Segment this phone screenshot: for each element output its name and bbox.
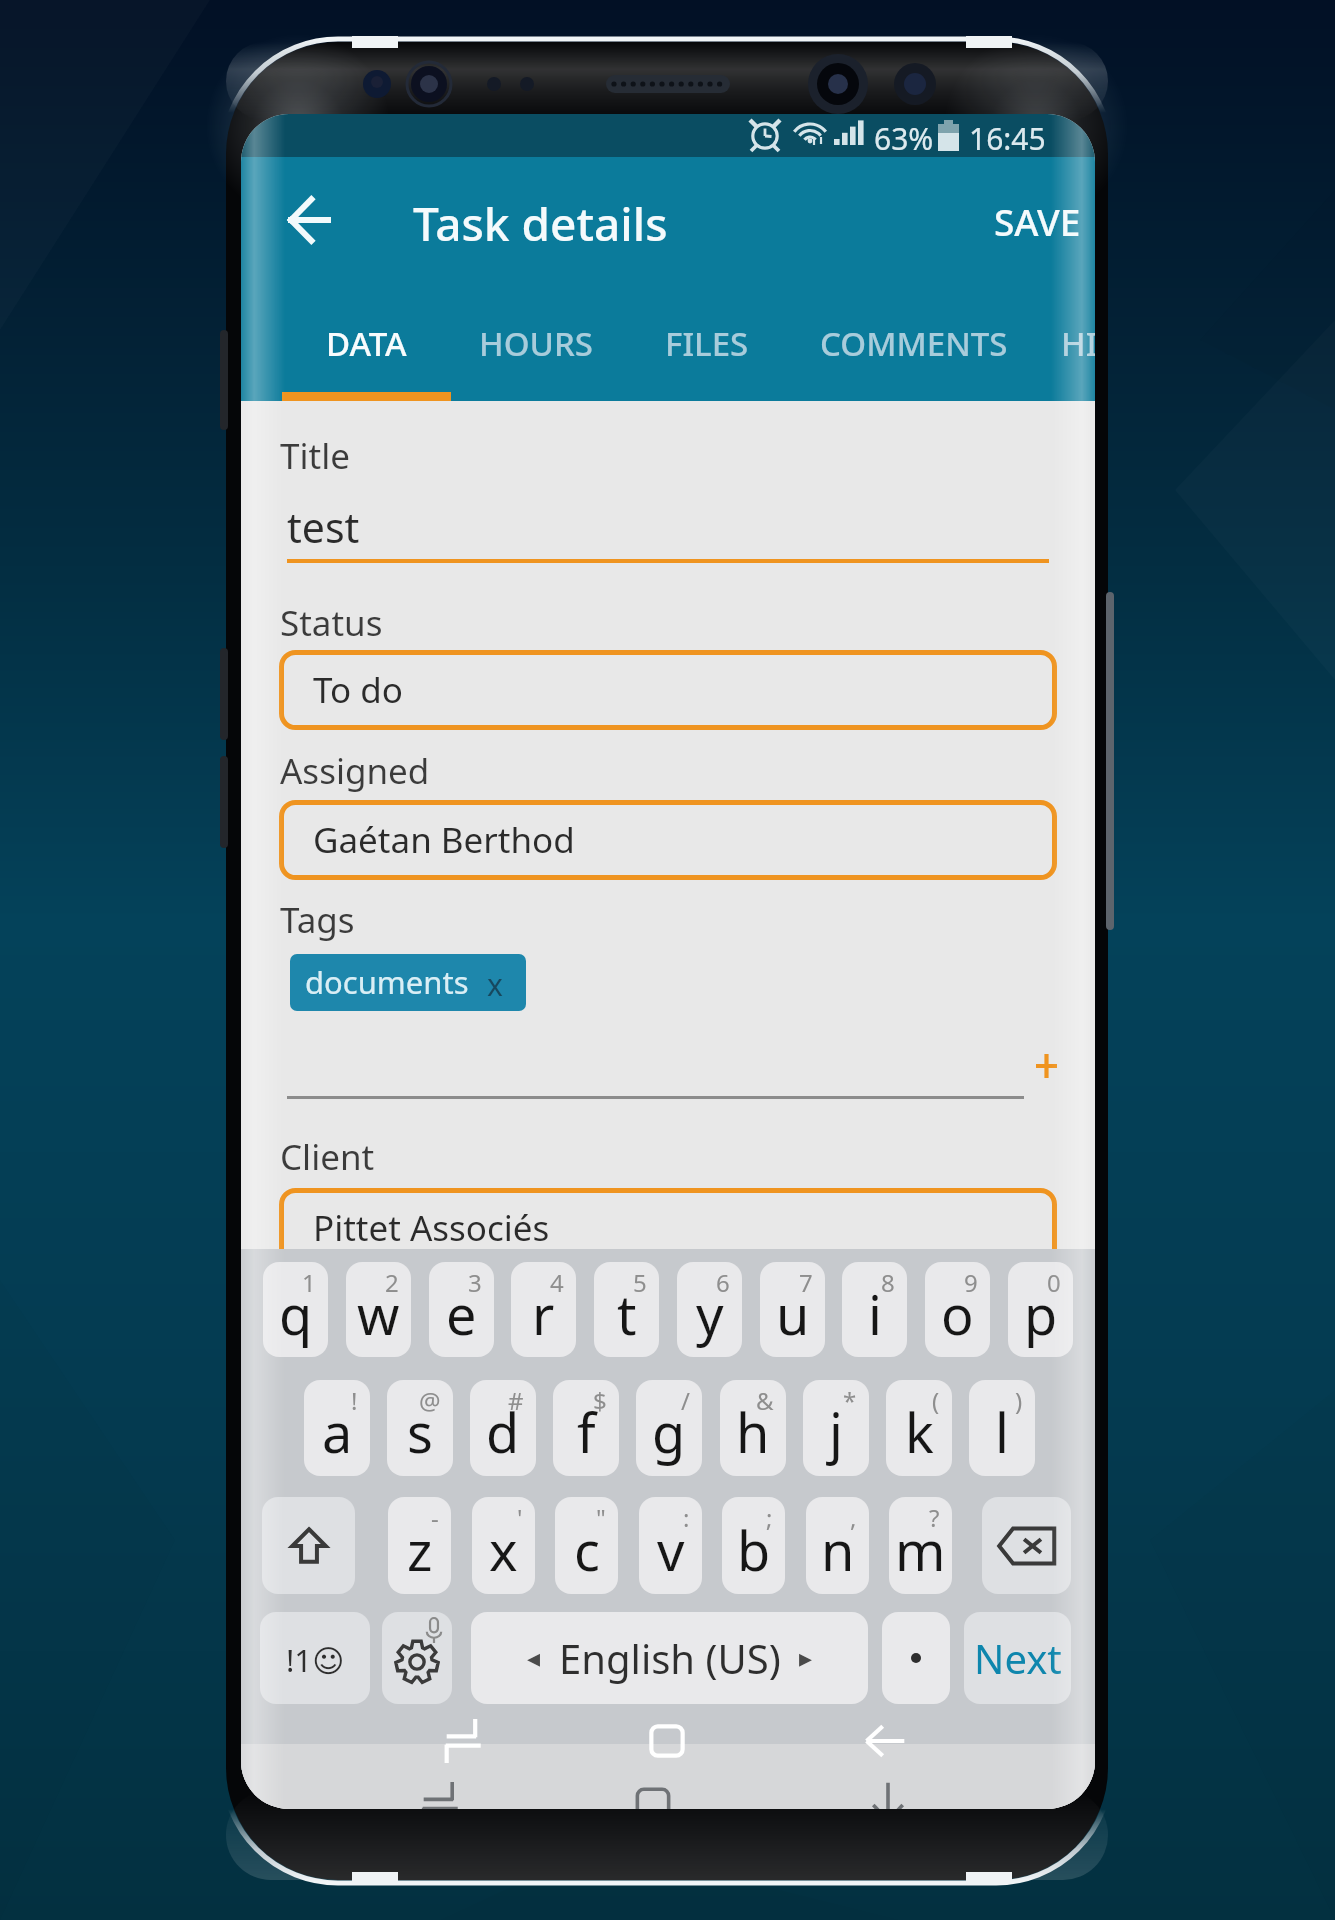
button[interactable]: 4 (511, 1262, 576, 1357)
staticText: test (287, 499, 360, 555)
button[interactable]: ? (889, 1497, 952, 1594)
staticText: SAVE (994, 196, 1081, 246)
staticText: f (577, 1395, 596, 1469)
staticText: FILES (665, 321, 749, 366)
button[interactable]: 7 (760, 1262, 825, 1357)
staticText: b (737, 1513, 771, 1587)
staticText: , (850, 1501, 857, 1534)
button[interactable]: 3 (429, 1262, 494, 1357)
staticText: documents (305, 961, 469, 1003)
button[interactable] (882, 1612, 950, 1704)
staticText: 6 (716, 1266, 730, 1299)
button[interactable]: 5 (594, 1262, 659, 1357)
button[interactable]: Pittet Associés (279, 1188, 1057, 1268)
staticText: q (279, 1277, 313, 1351)
button[interactable]: DATA (303, 299, 430, 392)
button[interactable]: ! (304, 1380, 370, 1476)
staticText: & (756, 1384, 774, 1417)
button[interactable]: Back (851, 1707, 919, 1775)
staticText: 63% (874, 118, 934, 159)
staticText: k (905, 1395, 934, 1469)
button[interactable]: ◂ (471, 1612, 868, 1704)
staticText: * (843, 1384, 857, 1417)
button[interactable]: ) (969, 1380, 1035, 1476)
staticText: : (683, 1501, 690, 1534)
button[interactable]: Add tag (1018, 1038, 1074, 1094)
staticText: l (995, 1395, 1009, 1469)
staticText: 8 (881, 1266, 895, 1299)
button[interactable]: FILES (641, 299, 773, 392)
button[interactable]: @ (387, 1380, 453, 1476)
staticText: 9 (964, 1266, 978, 1299)
staticText: English (US) (559, 1631, 781, 1685)
button[interactable]: SAVE (980, 186, 1094, 256)
button[interactable]: HISTORY (1037, 299, 1095, 392)
staticText: 0 (1047, 1266, 1061, 1299)
button[interactable]: !1☺ (260, 1612, 370, 1704)
button[interactable]: * (803, 1380, 869, 1476)
staticText: Assigned (280, 747, 430, 795)
button[interactable]: - (388, 1497, 451, 1594)
staticText: DATA (326, 321, 407, 366)
button[interactable]: 9 (925, 1262, 990, 1357)
button[interactable]: test (287, 487, 1049, 563)
button[interactable]: Next (964, 1612, 1071, 1704)
button[interactable]: & (720, 1380, 786, 1476)
button[interactable]: Recents (432, 1707, 500, 1775)
button[interactable]: Shift (262, 1497, 355, 1594)
staticText: 1 (302, 1266, 316, 1299)
staticText: To do (313, 666, 403, 714)
staticText: ; (766, 1501, 773, 1534)
staticText: 3 (468, 1266, 482, 1299)
button[interactable]: 2 (346, 1262, 411, 1357)
button[interactable]: ( (886, 1380, 952, 1476)
staticText: y (696, 1277, 724, 1351)
staticText: ' (517, 1501, 523, 1534)
staticText: a (322, 1395, 353, 1469)
button[interactable]: Gaétan Berthod (279, 800, 1057, 880)
button[interactable]: " (555, 1497, 618, 1594)
button[interactable]: To do (279, 650, 1057, 730)
button[interactable]: / (636, 1380, 702, 1476)
staticText: w (357, 1277, 400, 1351)
staticText: HOURS (479, 321, 593, 366)
staticText: 5 (633, 1266, 647, 1299)
button[interactable]: Keyboard settings (382, 1612, 452, 1704)
button[interactable]: , (806, 1497, 869, 1594)
staticText: n (821, 1513, 855, 1587)
staticText: t (617, 1277, 637, 1351)
button[interactable]: Backspace (982, 1497, 1071, 1594)
staticText: u (776, 1277, 810, 1351)
staticText: ( (932, 1384, 940, 1417)
button[interactable]: 6 (677, 1262, 742, 1357)
button[interactable]: 8 (842, 1262, 907, 1357)
button[interactable]: ' (472, 1497, 535, 1594)
staticText: Next (974, 1631, 1062, 1685)
staticText: z (407, 1513, 433, 1587)
staticText: h (736, 1395, 770, 1469)
button[interactable]: # (470, 1380, 536, 1476)
button[interactable]: Home (633, 1707, 701, 1775)
button[interactable]: COMMENTS (798, 299, 1030, 392)
staticText: Gaétan Berthod (313, 816, 575, 864)
staticText: Task details (413, 192, 668, 255)
button[interactable]: 0 (1008, 1262, 1073, 1357)
staticText: / (681, 1384, 690, 1417)
button[interactable]: 1 (263, 1262, 328, 1357)
staticText: ? (929, 1501, 940, 1534)
button[interactable]: ; (722, 1497, 785, 1594)
button[interactable]: : (639, 1497, 702, 1594)
staticText: o (941, 1277, 974, 1351)
staticText: j (829, 1395, 843, 1469)
staticText: 16:45 (969, 118, 1046, 159)
staticText: COMMENTS (820, 321, 1008, 366)
button[interactable]: documents (290, 954, 526, 1011)
staticText: 2 (385, 1266, 399, 1299)
staticText: # (508, 1384, 524, 1417)
staticText: Status (280, 599, 383, 647)
button[interactable]: Back (275, 186, 343, 254)
staticText: d (486, 1395, 520, 1469)
button[interactable]: HOURS (457, 299, 614, 392)
button[interactable]: $ (553, 1380, 619, 1476)
staticText: g (652, 1395, 686, 1469)
